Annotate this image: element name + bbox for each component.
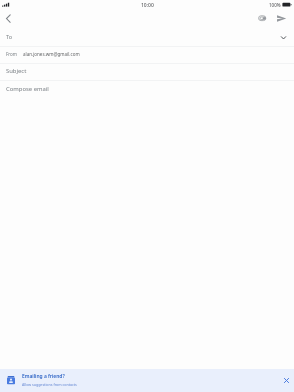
button[interactable]: Navigate back — [0, 11, 17, 28]
button[interactable]: Dismiss suggestion — [281, 375, 292, 386]
staticText: 10:00 — [141, 2, 154, 9]
staticText: 100% — [269, 2, 281, 8]
button[interactable]: From — [0, 47, 294, 63]
staticText: To — [6, 33, 13, 40]
staticText: From — [6, 51, 18, 57]
button[interactable]: Compose email — [0, 81, 294, 97]
staticText: alan.jones.wm@gmail.com — [23, 51, 80, 57]
button[interactable]: Emailing a friend? — [0, 369, 294, 392]
staticText: Allow suggestions from contacts — [22, 382, 77, 387]
button[interactable]: Subject — [0, 64, 294, 80]
button[interactable]: Send — [272, 11, 289, 28]
button[interactable]: Show Cc and Bcc — [280, 31, 294, 45]
button[interactable]: To — [0, 30, 294, 46]
staticText: Emailing a friend? — [22, 373, 65, 380]
button[interactable]: Attach file — [253, 11, 270, 28]
staticText: Compose email — [6, 85, 49, 93]
staticText: Subject — [6, 67, 27, 75]
